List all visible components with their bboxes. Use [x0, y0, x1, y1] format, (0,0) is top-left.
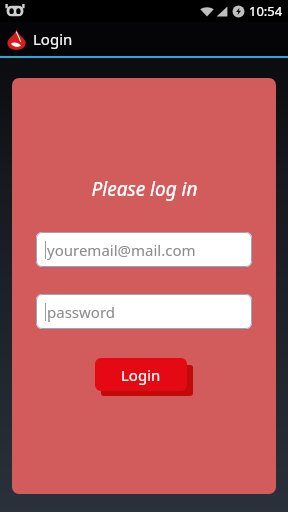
staticText: Login	[121, 365, 161, 385]
staticText: Please log in	[91, 176, 198, 202]
staticText: password	[47, 302, 115, 322]
staticText: 10:54	[249, 2, 283, 20]
staticText: youremail@mail.com	[47, 240, 196, 260]
button[interactable]: Login	[95, 358, 193, 398]
staticText: Login	[33, 29, 73, 49]
button[interactable]: password	[36, 294, 252, 329]
button[interactable]: youremail@mail.com	[36, 232, 252, 267]
